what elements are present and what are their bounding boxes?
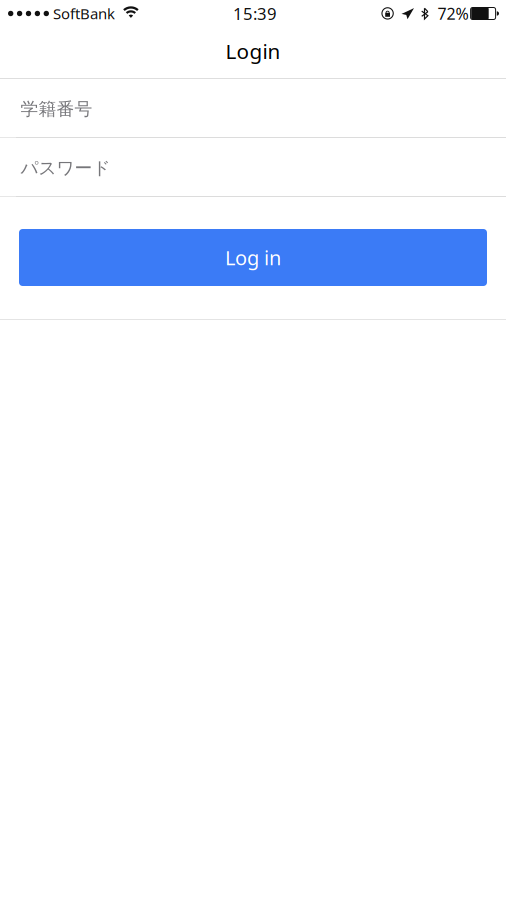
button[interactable]: パスワード (0, 138, 506, 196)
button[interactable]: Log in (19, 229, 487, 286)
staticText: Log in (225, 244, 281, 271)
staticText: 15:39 (233, 2, 277, 24)
staticText: 72% (438, 3, 469, 24)
staticText: SoftBank (53, 4, 115, 23)
staticText: Login (225, 37, 280, 65)
staticText: パスワード (20, 157, 110, 179)
button[interactable]: 学籍番号 (0, 79, 506, 137)
staticText: 学籍番号 (20, 98, 92, 120)
